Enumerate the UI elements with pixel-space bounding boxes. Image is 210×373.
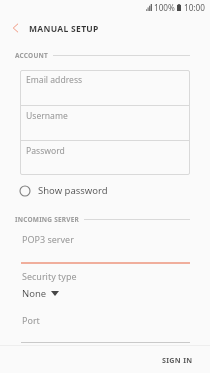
button[interactable]: Navigate up: [0, 14, 27, 41]
staticText: Port: [22, 314, 40, 326]
button[interactable]: Show password: [0, 180, 210, 201]
button[interactable]: Email address: [20, 70, 190, 105]
staticText: Password: [26, 145, 65, 157]
button[interactable]: Security type: [0, 267, 210, 301]
button[interactable]: Password: [20, 141, 190, 174]
staticText: 10:00: [184, 2, 205, 13]
staticText: ACCOUNT: [15, 51, 48, 60]
staticText: Security type: [22, 270, 77, 282]
staticText: Show password: [38, 184, 108, 197]
staticText: Username: [26, 110, 68, 122]
button[interactable]: Username: [20, 106, 190, 140]
staticText: SIGN IN: [162, 355, 193, 365]
button[interactable]: Port: [0, 311, 210, 345]
button[interactable]: SIGN IN: [145, 348, 210, 372]
button[interactable]: POP3 server: [0, 230, 210, 264]
staticText: INCOMING SERVER: [15, 215, 79, 224]
staticText: Email address: [26, 74, 83, 86]
staticText: None: [22, 287, 47, 300]
staticText: MANUAL SETUP: [29, 23, 99, 35]
staticText: POP3 server: [22, 233, 74, 245]
staticText: 100%: [154, 2, 175, 13]
